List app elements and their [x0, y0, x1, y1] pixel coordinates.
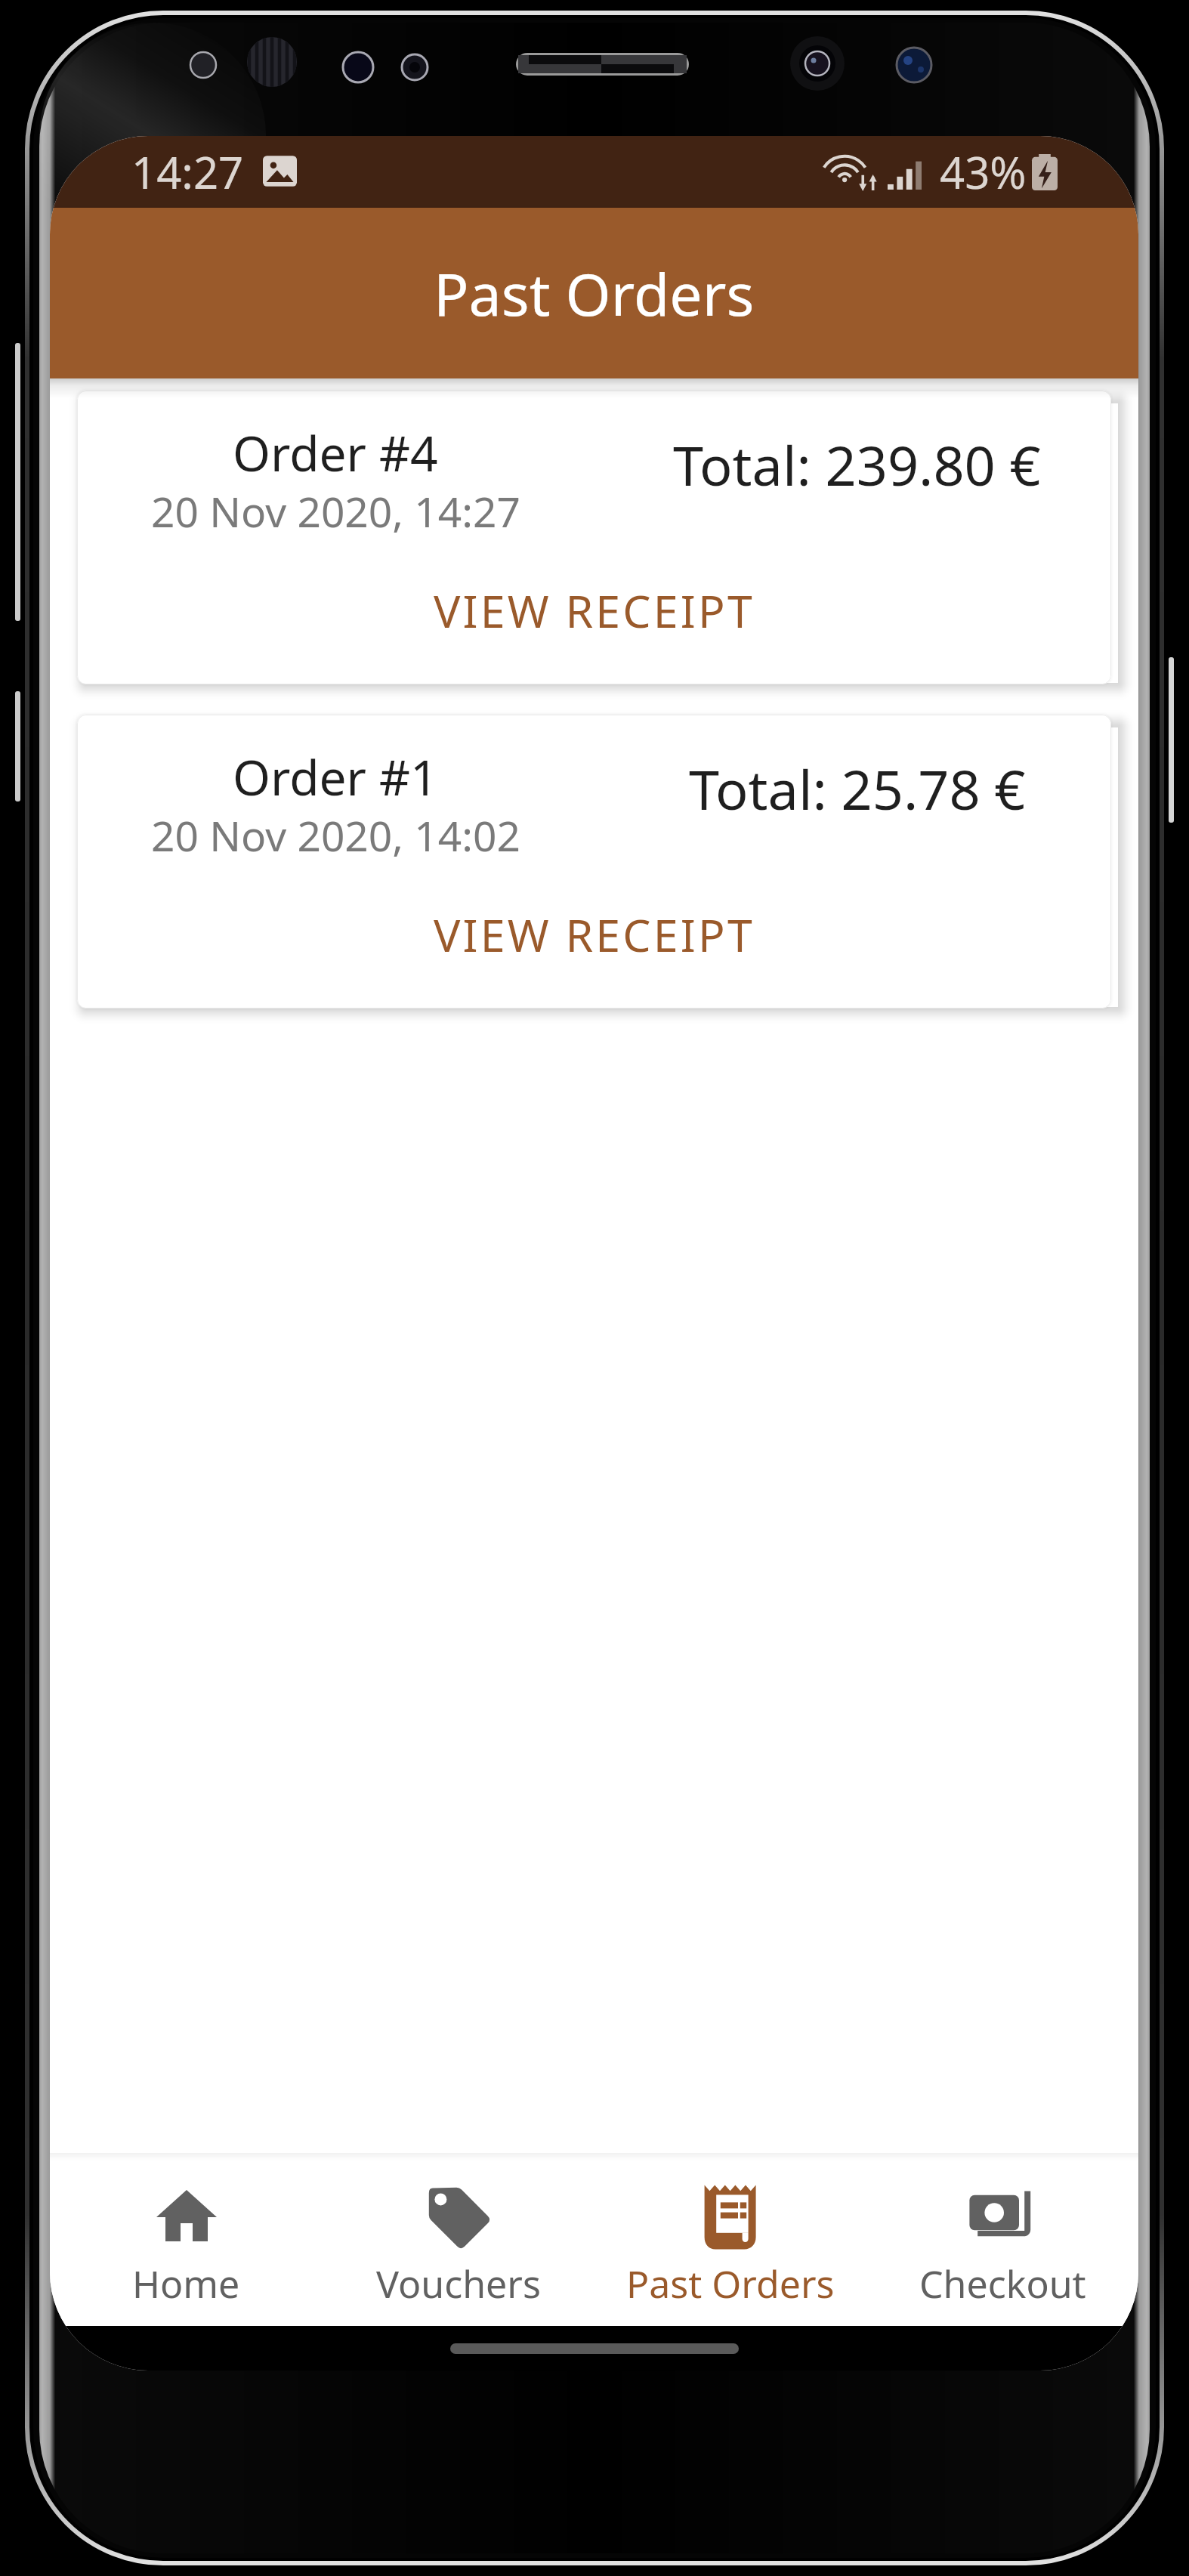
button[interactable]: Past Orders [594, 2153, 866, 2326]
staticText: Total: 239.80 € [673, 428, 1041, 502]
button[interactable]: VIEW RECEIPT [77, 904, 1111, 972]
button[interactable]: Order #4, Total: 239.80 € [77, 391, 1111, 684]
staticText: Vouchers [376, 2258, 541, 2309]
staticText: VIEW RECEIPT [434, 904, 755, 965]
staticText: Checkout [919, 2258, 1086, 2309]
staticText: 20 Nov 2020, 14:02 [151, 807, 520, 863]
button[interactable]: Home [50, 2153, 323, 2326]
staticText: Total: 25.78 € [689, 752, 1026, 826]
staticText: Past Orders [434, 254, 755, 333]
staticText: 43% [940, 142, 1027, 202]
staticText: Past Orders [626, 2258, 835, 2309]
button[interactable]: Vouchers [323, 2153, 594, 2326]
staticText: Order #1 [233, 744, 438, 810]
button[interactable]: VIEW RECEIPT [77, 580, 1111, 648]
button[interactable]: Order #1, Total: 25.78 € [77, 715, 1111, 1008]
staticText: VIEW RECEIPT [434, 580, 755, 641]
staticText: Order #4 [233, 420, 438, 486]
button[interactable]: Checkout [866, 2153, 1138, 2326]
staticText: Home [132, 2258, 240, 2309]
staticText: 14:27 [131, 142, 244, 202]
staticText: 20 Nov 2020, 14:27 [151, 483, 520, 539]
